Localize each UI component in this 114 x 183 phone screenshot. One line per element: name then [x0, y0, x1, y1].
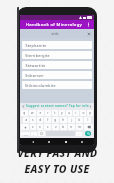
other: Previous	[22, 105, 25, 108]
button[interactable]: f	[44, 117, 51, 123]
staticText: Sternbergite	[25, 53, 50, 58]
staticText: r	[47, 111, 49, 115]
button[interactable]: Emoji	[38, 131, 45, 136]
other: Voice input	[89, 105, 92, 108]
staticText: l	[87, 118, 89, 122]
staticText: u	[68, 111, 71, 115]
button[interactable]: Back	[29, 138, 36, 145]
staticText: Handbook of Mineralogy	[23, 22, 85, 28]
button[interactable]: k	[76, 117, 83, 123]
button[interactable]: l	[84, 117, 91, 123]
button[interactable]: y	[59, 110, 65, 116]
button[interactable]: t	[52, 110, 58, 116]
staticText: Stewartite	[25, 63, 46, 68]
button[interactable]: More options	[85, 21, 92, 28]
staticText: f	[47, 118, 49, 122]
staticText: a	[25, 118, 28, 122]
button[interactable]: o	[80, 110, 86, 116]
staticText: s	[32, 118, 34, 122]
staticText: EASY TO USE	[24, 162, 90, 176]
staticText: z	[32, 125, 34, 129]
button[interactable]: Stibiocolumbite	[22, 81, 92, 89]
button[interactable]: s	[30, 117, 36, 123]
button[interactable]: u	[66, 110, 72, 116]
staticText: VERY FAST AND	[17, 146, 98, 160]
button[interactable]: g	[52, 117, 59, 123]
staticText: k	[78, 118, 81, 122]
staticText: t	[54, 111, 56, 115]
button[interactable]: h	[60, 117, 67, 123]
button[interactable]: x	[37, 124, 43, 130]
button[interactable]: Stewartite	[22, 61, 92, 69]
staticText: ,	[33, 132, 35, 136]
staticText: d	[39, 118, 42, 122]
button[interactable]: i	[73, 110, 79, 116]
staticText: Stibiocolumbite	[25, 83, 56, 88]
button[interactable]: Recents	[62, 138, 69, 145]
button[interactable]: Stibarsen	[22, 71, 92, 79]
button[interactable]: Shift	[21, 124, 29, 130]
button[interactable]: z	[30, 124, 36, 130]
staticText: o	[82, 111, 85, 115]
button[interactable]: d	[37, 117, 43, 123]
button[interactable]: n	[68, 124, 75, 130]
button[interactable]: .	[76, 132, 82, 136]
staticText: m	[78, 125, 82, 129]
staticText: stib	[23, 31, 87, 36]
button[interactable]: Backspace	[84, 124, 93, 130]
button[interactable]: b	[60, 124, 67, 130]
button[interactable]: Stephanite	[22, 41, 92, 49]
button[interactable]: v	[52, 124, 59, 130]
staticText: g	[54, 118, 57, 122]
staticText: b	[62, 125, 65, 129]
staticText: ?123	[22, 133, 29, 136]
staticText: Stephanite	[25, 43, 47, 48]
button[interactable]: Menu	[78, 138, 85, 145]
staticText: .	[78, 132, 80, 136]
staticText: n	[70, 125, 73, 129]
button[interactable]: Sternbergite	[22, 51, 92, 59]
staticText: w	[31, 111, 34, 115]
other: Clear search	[87, 32, 91, 36]
staticText: e	[39, 111, 42, 115]
staticText: c	[47, 125, 49, 129]
button[interactable]: e	[37, 110, 44, 116]
button[interactable]: stib	[23, 29, 91, 38]
staticText: x	[39, 125, 41, 129]
button[interactable]: p	[87, 110, 93, 116]
staticText: y	[61, 111, 63, 115]
button[interactable]: a	[23, 117, 29, 123]
button[interactable]: r	[45, 110, 51, 116]
staticText: j	[71, 118, 73, 122]
button[interactable]: Home	[45, 138, 52, 145]
button[interactable]: m	[76, 124, 83, 130]
button[interactable]: ?123	[21, 132, 30, 136]
button[interactable]: ,	[31, 132, 37, 136]
button[interactable]: Search	[85, 131, 91, 136]
button[interactable]: c	[44, 124, 51, 130]
staticText: p	[89, 111, 92, 115]
staticText: h	[62, 118, 65, 122]
staticText: Suggest content names? Tap for info	[26, 104, 89, 108]
staticText: Stibarsen	[25, 73, 44, 78]
staticText: i	[75, 111, 77, 115]
button[interactable]: w	[29, 110, 36, 116]
button[interactable]: q	[21, 110, 28, 116]
button[interactable]: j	[68, 117, 75, 123]
staticText: q	[23, 111, 26, 115]
staticText: v	[55, 125, 57, 129]
